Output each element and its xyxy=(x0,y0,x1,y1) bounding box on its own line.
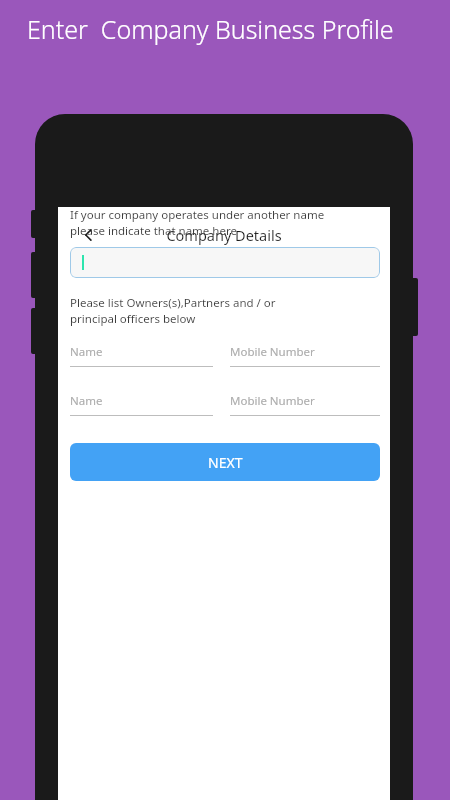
button[interactable]: NEXT xyxy=(70,443,380,481)
staticText: Enter Company Business Profile xyxy=(27,12,394,46)
staticText: Name xyxy=(70,344,103,360)
staticText: Mobile Number xyxy=(230,344,315,360)
button[interactable]: Back xyxy=(70,216,108,254)
button[interactable]: Name xyxy=(70,344,213,367)
button[interactable] xyxy=(70,247,380,278)
staticText: Name xyxy=(70,393,103,409)
staticText: If your company operates under another n… xyxy=(70,207,325,238)
staticText: Company Details xyxy=(166,225,282,245)
staticText: NEXT xyxy=(208,453,243,472)
button[interactable]: Mobile Number xyxy=(230,393,380,416)
staticText: Mobile Number xyxy=(230,393,315,409)
button[interactable]: Name xyxy=(70,393,213,416)
staticText: Please list Owners(s),Partners and / or … xyxy=(70,295,276,326)
button[interactable]: Mobile Number xyxy=(230,344,380,367)
